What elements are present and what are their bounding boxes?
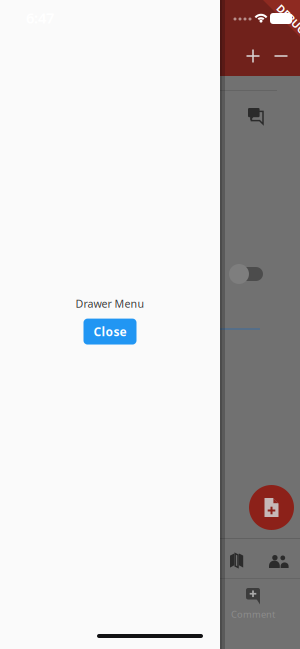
button[interactable]: Comment [231, 588, 275, 620]
button[interactable]: Remove [268, 43, 294, 69]
staticText: Close [93, 324, 126, 339]
button[interactable]: New note [249, 485, 294, 530]
staticText: Comment [231, 608, 275, 620]
button[interactable]: Add [240, 43, 266, 69]
staticText: DEBUG [273, 12, 300, 26]
button[interactable]: People [269, 555, 289, 568]
button[interactable]: Close [83, 319, 136, 344]
staticText: Drawer Menu [75, 296, 144, 311]
button[interactable]: Map [230, 553, 244, 568]
